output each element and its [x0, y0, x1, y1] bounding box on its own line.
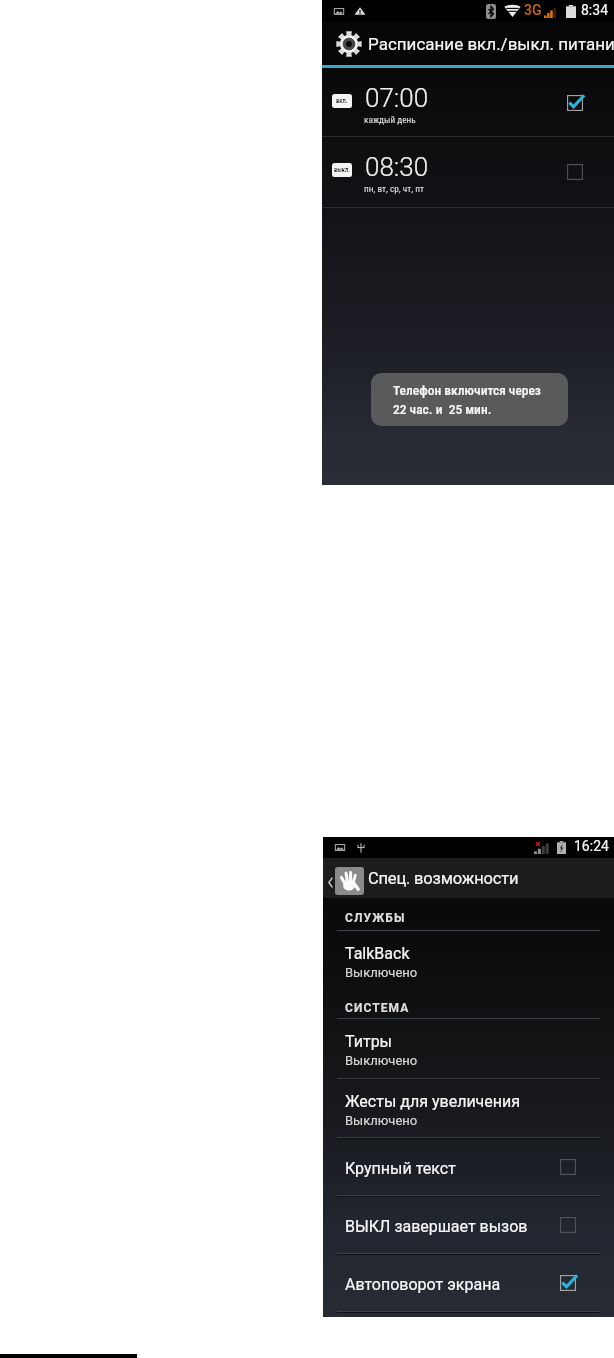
staticText: 07:00: [365, 83, 429, 113]
staticText: СЛУЖБЫ: [345, 911, 406, 925]
staticText: 22 час. и 25 мин.: [393, 401, 492, 417]
button[interactable]: Toggle Крупный текст: [553, 1152, 583, 1182]
button[interactable]: Расписание вкл./выкл. питани: [322, 22, 614, 65]
button[interactable]: TalkBack: [323, 931, 614, 986]
button[interactable]: Toggle ВЫКЛ завершает вызов: [553, 1210, 583, 1240]
staticText: Телефон включится через: [393, 382, 541, 398]
staticText: Расписание вкл./выкл. питани: [368, 34, 614, 54]
button[interactable]: Toggle alarm 07:00: [564, 92, 586, 114]
staticText: ВЫКЛ завершает вызов: [345, 1217, 528, 1236]
button[interactable]: Жесты для увеличения: [323, 1079, 614, 1138]
staticText: Крупный текст: [345, 1159, 456, 1178]
staticText: 08:30: [365, 152, 429, 182]
other: Accessibility: [335, 867, 364, 895]
button[interactable]: выкл.: [322, 137, 614, 208]
staticText: Спец. возможности: [368, 869, 519, 888]
staticText: TalkBack: [345, 944, 410, 963]
staticText: Жесты для увеличения: [345, 1092, 521, 1111]
staticText: Выключено: [345, 1053, 418, 1068]
button[interactable]: вкл.: [322, 68, 614, 137]
staticText: СИСТЕМА: [345, 1001, 410, 1015]
staticText: 3G: [524, 2, 542, 18]
button[interactable]: Back: [323, 858, 614, 898]
staticText: вкл.: [336, 97, 348, 105]
staticText: пн, вт, ср, чт, пт: [364, 183, 424, 194]
staticText: Титры: [345, 1032, 393, 1051]
staticText: Выключено: [345, 965, 418, 980]
staticText: Выключено: [345, 1113, 418, 1128]
button[interactable]: Toggle Автоповорот экрана: [553, 1268, 583, 1298]
staticText: 16:24: [574, 838, 609, 854]
button[interactable]: Автоповорот экрана: [323, 1254, 614, 1312]
button[interactable]: ВЫКЛ завершает вызов: [323, 1196, 614, 1254]
staticText: каждый день: [364, 114, 416, 125]
staticText: выкл.: [334, 166, 351, 174]
staticText: 8:34: [581, 2, 608, 18]
staticText: Автоповорот экрана: [345, 1275, 501, 1294]
other: Back: [328, 877, 333, 888]
button[interactable]: Титры: [323, 1019, 614, 1079]
button[interactable]: Крупный текст: [323, 1138, 614, 1196]
button[interactable]: Toggle alarm 08:30: [564, 161, 586, 183]
